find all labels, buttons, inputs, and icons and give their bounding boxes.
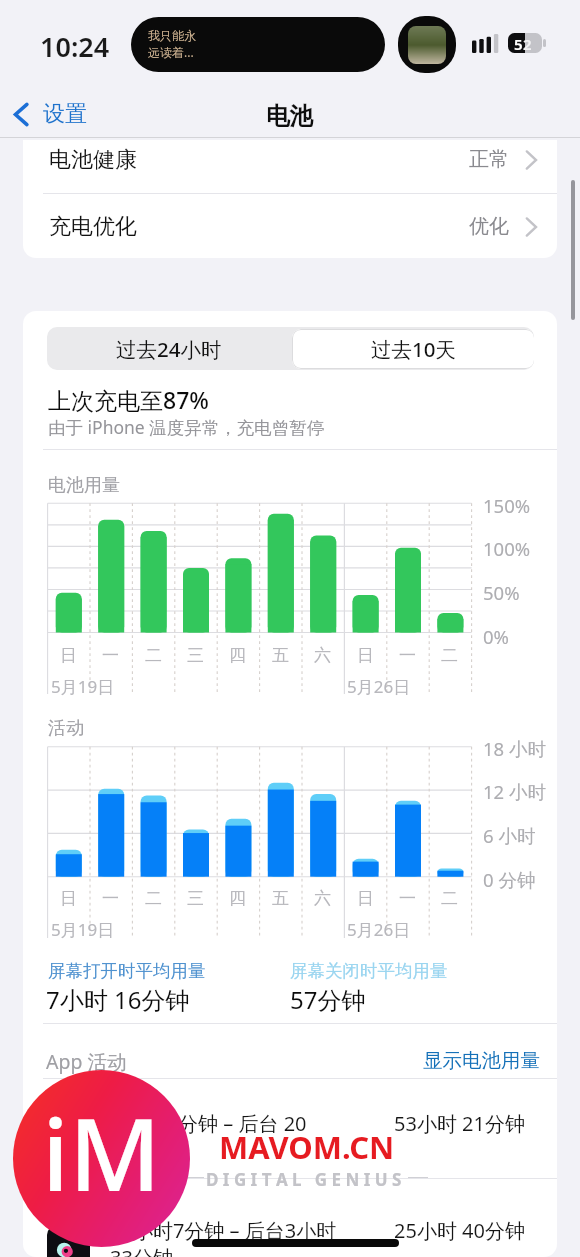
staticText: 5月19日: [51, 918, 115, 941]
staticText: MAVOM.CN: [219, 1126, 395, 1168]
staticText: 5月19日: [51, 675, 115, 698]
staticText: 三: [187, 888, 204, 909]
staticText: 5: [514, 34, 523, 53]
button[interactable]: 过去10天: [292, 329, 534, 369]
staticText: 由于 iPhone 温度异常，充电曾暂停: [48, 415, 325, 439]
staticText: 电池: [266, 101, 313, 131]
staticText: 二: [441, 645, 458, 666]
button[interactable]: 电池健康: [23, 140, 557, 193]
staticText: 我只能永 远读着...: [148, 28, 196, 60]
staticText: 5月26日: [347, 918, 411, 941]
staticText: 50%: [483, 580, 520, 605]
staticText: 57分钟: [290, 983, 366, 1016]
staticText: 过去10天: [371, 335, 456, 363]
staticText: 三: [187, 645, 204, 666]
button[interactable]: 设置: [8, 94, 93, 134]
staticText: 100%: [483, 536, 531, 561]
staticText: 0%: [483, 624, 509, 649]
staticText: 过去24小时: [116, 335, 222, 363]
staticText: 设置: [43, 100, 87, 128]
button[interactable]: 显示电池用量: [417, 1042, 546, 1079]
staticText: 上次充电至87%: [48, 384, 209, 415]
button[interactable]: 充电优化: [23, 193, 557, 258]
staticText: 一: [102, 888, 119, 909]
staticText: 2: [523, 34, 532, 53]
staticText: 二: [441, 888, 458, 909]
staticText: 电池健康: [49, 146, 137, 174]
staticText: 一: [102, 645, 119, 666]
staticText: 四: [229, 645, 246, 666]
staticText: 10:24: [40, 28, 110, 65]
staticText: 6 小时: [483, 823, 536, 848]
staticText: App 活动: [46, 1048, 127, 1075]
staticText: 屏幕打开时平均用量: [48, 960, 206, 982]
staticText: 日: [60, 888, 77, 909]
staticText: 日: [357, 645, 374, 666]
staticText: iM: [42, 1084, 161, 1220]
staticText: 53小时 21分钟: [394, 1110, 525, 1137]
other: Camera preview: [398, 16, 456, 73]
staticText: 0 分钟: [483, 867, 536, 892]
staticText: 5月26日: [347, 675, 411, 698]
staticText: 正常: [469, 147, 509, 172]
staticText: D I G I T A L G E N I U S: [206, 1168, 402, 1191]
staticText: 五: [272, 645, 289, 666]
button[interactable]: 过去24小时: [47, 327, 291, 370]
staticText: 六: [314, 645, 331, 666]
staticText: 一: [399, 888, 416, 909]
staticText: 二: [145, 645, 162, 666]
staticText: 7小时 16分钟: [46, 983, 190, 1016]
staticText: 日: [357, 888, 374, 909]
staticText: 12 小时: [483, 779, 546, 804]
staticText: 电池用量: [48, 474, 120, 497]
staticText: 小时 29分钟 – 后台 20 钟: [110, 1110, 307, 1163]
staticText: 150%: [483, 493, 531, 518]
staticText: 二: [145, 888, 162, 909]
button[interactable]: 小时 29分钟 – 后台 20 钟: [0, 1088, 580, 1184]
staticText: 18 小时: [483, 736, 546, 761]
staticText: 屏幕关闭时平均用量: [290, 960, 448, 982]
staticText: 活动: [48, 717, 84, 740]
staticText: 显示电池用量: [423, 1048, 540, 1073]
button[interactable]: 22小时7分钟 – 后台3小时 33分钟: [0, 1195, 580, 1257]
staticText: 25小时 40分钟: [394, 1217, 525, 1244]
staticText: 22小时7分钟 – 后台3小时 33分钟: [110, 1217, 337, 1257]
staticText: 日: [60, 645, 77, 666]
staticText: 充电优化: [49, 213, 137, 241]
staticText: 五: [272, 888, 289, 909]
staticText: 优化: [469, 214, 509, 239]
staticText: 四: [229, 888, 246, 909]
staticText: 六: [314, 888, 331, 909]
staticText: 一: [399, 645, 416, 666]
